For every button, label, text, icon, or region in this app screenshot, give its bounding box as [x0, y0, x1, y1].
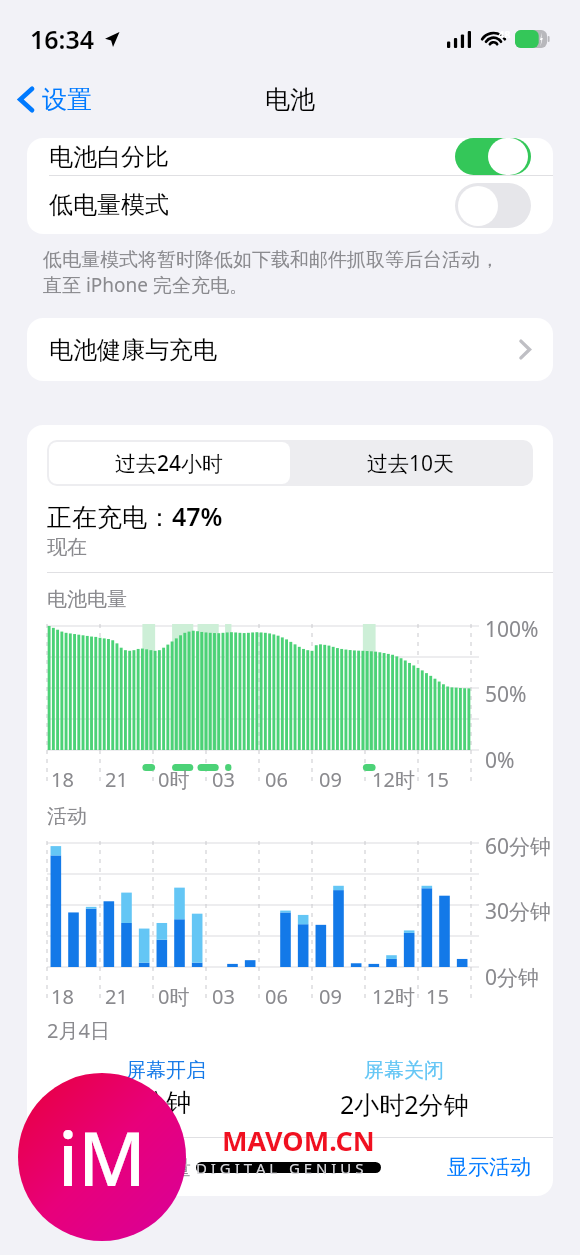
staticText: iM	[58, 1107, 146, 1208]
staticText: 06	[265, 983, 288, 1010]
button[interactable]: 过去10天	[290, 442, 531, 484]
staticText: 03	[212, 983, 235, 1010]
staticText: 60分钟	[485, 832, 552, 861]
staticText: 18	[51, 983, 74, 1010]
staticText: 过去10天	[367, 449, 455, 478]
staticText: 电池健康与充电	[49, 335, 217, 365]
staticText: 0%	[485, 746, 515, 775]
staticText: 屏幕关闭	[364, 1058, 444, 1083]
staticText: MAVOM.CN	[222, 1122, 375, 1159]
button[interactable]: 设置	[14, 78, 96, 121]
staticText: 09	[319, 766, 342, 793]
staticText: 03	[212, 766, 235, 793]
staticText: 电池	[265, 84, 315, 115]
staticText: 现在	[47, 535, 87, 560]
staticText: 电池白分比	[49, 142, 169, 172]
staticText: 过去24小时	[115, 449, 224, 478]
staticText: 0时	[158, 766, 190, 793]
staticText: 15	[426, 766, 449, 793]
staticText: 15	[426, 983, 449, 1010]
button[interactable]: 电池白分比	[27, 138, 553, 175]
staticText: 分钟	[141, 1087, 191, 1118]
staticText: 2月4日	[47, 1017, 110, 1044]
staticText: 100%	[485, 615, 539, 644]
button[interactable]: 过去24小时	[49, 442, 290, 484]
staticText: 显示活动	[447, 1154, 531, 1180]
staticText: 低电量模式	[49, 190, 169, 220]
staticText: 0时	[158, 983, 190, 1010]
staticText: 低电量模式将暂时降低如下载和邮件抓取等后台活动，	[43, 248, 499, 272]
button[interactable]: 电池健康与充电	[27, 318, 553, 381]
staticText: 2小时2分钟	[340, 1087, 469, 1121]
staticText: 30分钟	[485, 897, 552, 926]
staticText: 21	[105, 983, 128, 1010]
staticText: 48	[498, 27, 511, 38]
staticText: 设置	[42, 84, 92, 115]
button[interactable]: 显示活动	[447, 1154, 531, 1180]
staticText: 活动	[47, 804, 87, 829]
staticText: D I G I T A L G E N I U S	[196, 1158, 364, 1178]
staticText: 50%	[485, 680, 527, 709]
staticText: 12时	[372, 983, 415, 1010]
staticText: 18	[51, 766, 74, 793]
staticText: 0分钟	[485, 963, 540, 992]
staticText: 正在充电：47%	[47, 499, 223, 533]
staticText: 16:34	[30, 22, 95, 56]
staticText: 12时	[372, 766, 415, 793]
staticText: 直至 iPhone 完全充电。	[43, 272, 248, 298]
staticText: 屏幕开启	[126, 1058, 206, 1083]
staticText: 09	[319, 983, 342, 1010]
staticText: 电池电量	[47, 587, 127, 612]
staticText: 06	[265, 766, 288, 793]
staticText: App的电池用量	[47, 1153, 192, 1182]
staticText: 21	[105, 766, 128, 793]
button[interactable]: 低电量模式	[27, 176, 553, 234]
